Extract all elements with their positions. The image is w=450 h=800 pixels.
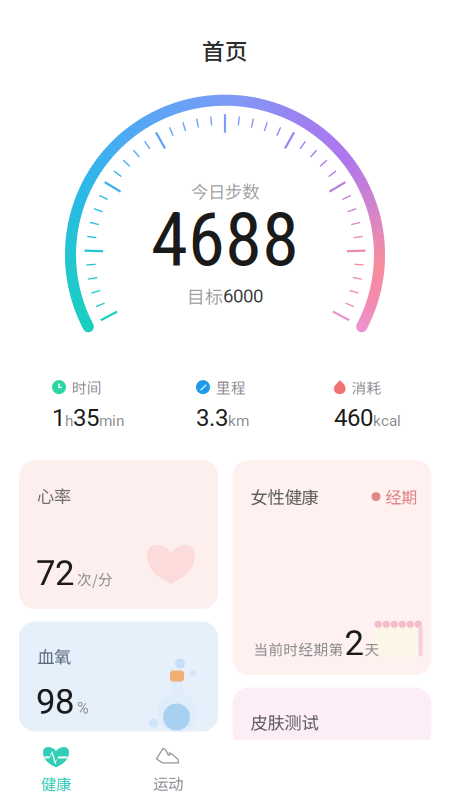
staticText: 4688 bbox=[151, 196, 299, 284]
staticText: 3.3 bbox=[196, 404, 228, 432]
button[interactable]: 皮肤测试 bbox=[232, 687, 431, 747]
button[interactable]: 运动 bbox=[112, 741, 224, 799]
button[interactable]: 首页 bbox=[165, 33, 285, 67]
staticText: min bbox=[99, 412, 124, 430]
staticText: 98 bbox=[36, 681, 74, 722]
staticText: 健康 bbox=[41, 772, 71, 795]
staticText: 35 bbox=[73, 404, 99, 432]
staticText: h bbox=[65, 412, 73, 430]
staticText: 消耗 bbox=[351, 376, 381, 398]
staticText: 今日步数 bbox=[191, 178, 259, 204]
staticText: 72 bbox=[36, 553, 74, 594]
staticText: km bbox=[228, 412, 249, 430]
staticText: 天 bbox=[364, 638, 379, 659]
staticText: 女性健康 bbox=[250, 484, 318, 509]
button[interactable]: 健康 bbox=[0, 741, 112, 799]
staticText: 6000 bbox=[223, 285, 263, 307]
staticText: 次/分 bbox=[77, 568, 113, 589]
staticText: 460 bbox=[334, 404, 373, 432]
staticText: 心率 bbox=[37, 483, 71, 508]
staticText: 皮肤测试 bbox=[250, 709, 318, 735]
staticText: 运动 bbox=[153, 772, 183, 794]
staticText: 里程 bbox=[216, 376, 246, 398]
staticText: 经期 bbox=[385, 485, 417, 508]
staticText: % bbox=[77, 699, 89, 718]
staticText: 时间 bbox=[72, 376, 102, 398]
button[interactable]: 女性健康 bbox=[232, 460, 431, 675]
button[interactable]: 心率 bbox=[19, 460, 218, 609]
staticText: 1 bbox=[52, 404, 65, 432]
button[interactable]: 血氧 bbox=[19, 621, 218, 731]
staticText: kcal bbox=[373, 412, 401, 430]
staticText: 目标 bbox=[187, 283, 223, 309]
staticText: 当前时经期第 bbox=[253, 638, 343, 659]
staticText: 血氧 bbox=[37, 643, 71, 669]
staticText: 2 bbox=[344, 623, 363, 664]
staticText: 首页 bbox=[202, 34, 248, 66]
